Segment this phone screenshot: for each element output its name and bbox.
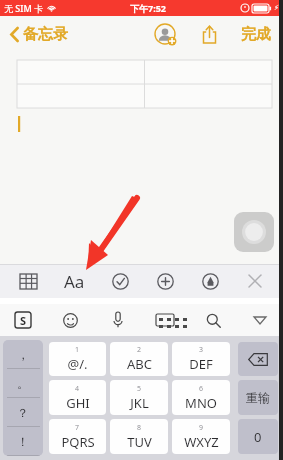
button[interactable]: Delete: [238, 342, 278, 376]
button[interactable]: ，: [3, 340, 43, 369]
staticText: 4: [75, 384, 80, 394]
button[interactable]: 完成: [239, 23, 273, 46]
button[interactable]: Add Attachment: [151, 267, 179, 295]
button[interactable]: 。: [3, 369, 43, 398]
button[interactable]: Table: [14, 267, 42, 295]
button[interactable]: 5: [110, 380, 168, 415]
staticText: 2: [137, 345, 142, 355]
button[interactable]: Emoji: [57, 307, 83, 333]
button[interactable]: Keyboard: [152, 307, 178, 333]
staticText: 8: [137, 423, 142, 433]
staticText: 1: [75, 345, 80, 355]
button[interactable]: 4: [49, 380, 106, 415]
staticText: GHI: [66, 394, 90, 412]
staticText: 备忘录: [23, 25, 68, 44]
button[interactable]: 0: [238, 419, 278, 454]
staticText: 重输: [246, 390, 270, 405]
button[interactable]: 1: [49, 342, 106, 376]
staticText: 0: [254, 428, 262, 446]
button[interactable]: ？: [3, 398, 43, 427]
staticText: 5: [137, 384, 142, 394]
staticText: TUV: [127, 433, 152, 451]
button[interactable]: AssistiveTouch: [234, 212, 274, 252]
staticText: S: [20, 313, 27, 328]
staticText: MNO: [185, 394, 217, 412]
staticText: 3: [199, 345, 204, 355]
staticText: 9: [199, 423, 204, 433]
staticText: 。: [17, 376, 29, 391]
button[interactable]: 3: [172, 342, 230, 376]
staticText: DEF: [189, 355, 213, 373]
button[interactable]: 重输: [238, 380, 278, 415]
button[interactable]: Add People: [153, 22, 177, 46]
staticText: ，: [17, 347, 29, 362]
staticText: 下午7:52: [130, 2, 166, 14]
button[interactable]: Voice Input: [105, 307, 131, 333]
button[interactable]: Search: [200, 307, 226, 333]
button[interactable]: Close: [241, 267, 269, 295]
button[interactable]: Aa: [59, 266, 89, 296]
button[interactable]: 9: [172, 419, 230, 454]
staticText: ⚡: [274, 4, 279, 12]
button[interactable]: 8: [110, 419, 168, 454]
button[interactable]: ！: [3, 427, 43, 456]
staticText: ABC: [127, 355, 152, 373]
button[interactable]: 6: [172, 380, 230, 415]
staticText: 7: [75, 423, 80, 433]
button[interactable]: 7: [49, 419, 106, 454]
button[interactable]: Markup: [196, 267, 224, 295]
button[interactable]: Hide Keyboard: [247, 307, 273, 333]
button[interactable]: Checklist: [106, 267, 134, 295]
button[interactable]: Share: [197, 22, 221, 46]
staticText: 完成: [241, 25, 271, 44]
staticText: @/.: [67, 355, 88, 373]
staticText: 6: [199, 384, 204, 394]
button[interactable]: 备忘录: [8, 21, 70, 48]
staticText: PQRS: [61, 433, 95, 451]
staticText: ？: [17, 405, 29, 420]
staticText: Aa: [64, 270, 85, 293]
button[interactable]: 2: [110, 342, 168, 376]
staticText: WXYZ: [184, 433, 219, 451]
staticText: 无 SIM 卡: [4, 2, 44, 14]
staticText: ！: [17, 434, 29, 449]
button[interactable]: Sogou Input: [10, 307, 36, 333]
staticText: JKL: [130, 394, 149, 412]
